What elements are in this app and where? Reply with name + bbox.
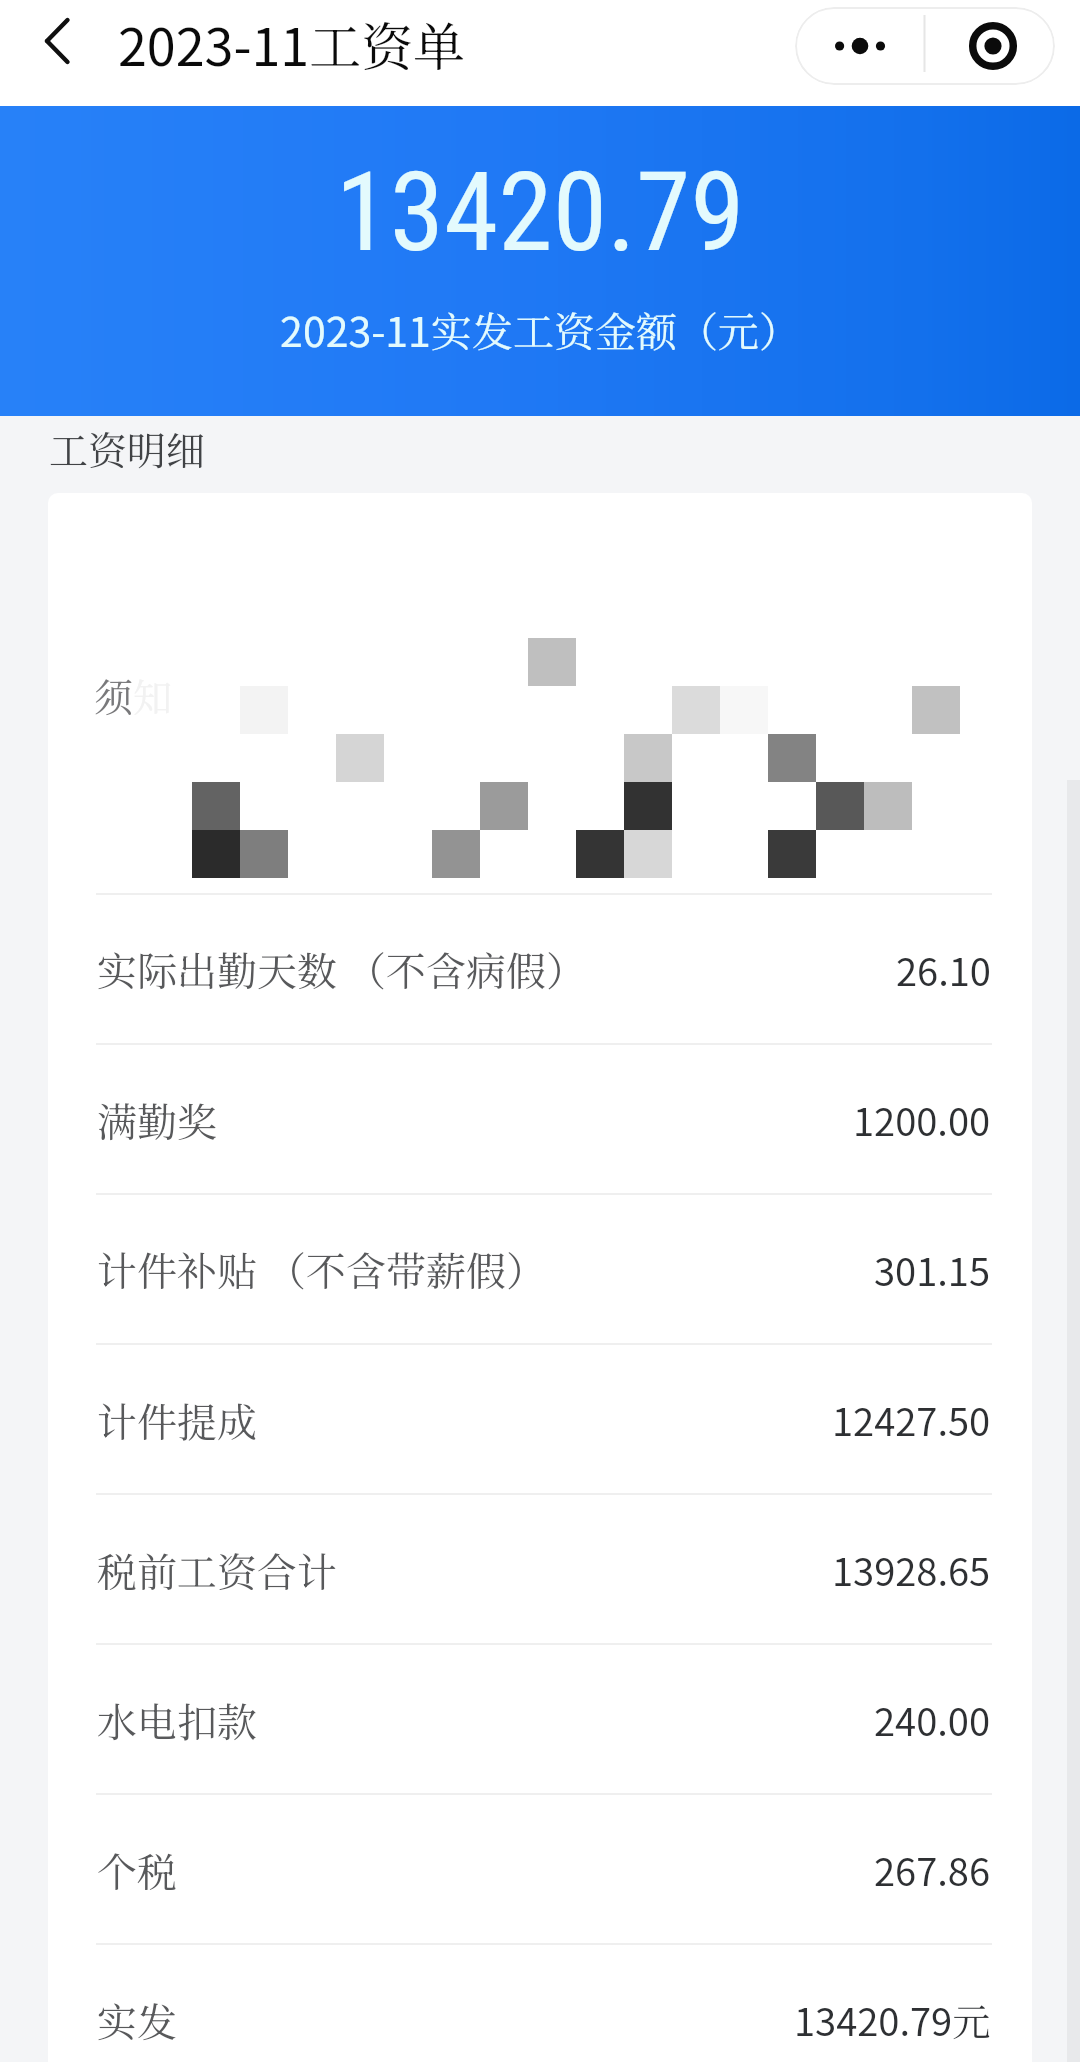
staticText: 2023-11实发工资金额（元）: [0, 299, 1080, 358]
staticText: 水电扣款: [97, 1691, 257, 1748]
staticText: 13928.65: [832, 1542, 991, 1597]
button[interactable]: 计件提成: [48, 1345, 1032, 1493]
button[interactable]: Back: [14, 6, 104, 96]
staticText: 2023-11工资单: [118, 6, 466, 81]
button[interactable]: 个税: [48, 1795, 1032, 1943]
staticText: 13420.79元: [794, 1992, 991, 2047]
button[interactable]: Close mini program: [925, 7, 1055, 85]
staticText: 个税: [97, 1841, 177, 1898]
staticText: 301.15: [874, 1242, 991, 1297]
staticText: 计件补贴 （不含带薪假）: [97, 1240, 546, 1298]
staticText: 税前工资合计: [97, 1541, 337, 1598]
button[interactable]: 实际出勤天数 （不含病假）: [48, 895, 1032, 1043]
staticText: 26.10: [896, 942, 991, 997]
button[interactable]: 满勤奖: [48, 1045, 1032, 1193]
staticText: 1200.00: [853, 1092, 991, 1147]
staticText: 240.00: [874, 1692, 991, 1747]
staticText: 实际出勤天数 （不含病假）: [97, 940, 586, 998]
button[interactable]: More options: [795, 7, 925, 85]
staticText: 12427.50: [832, 1392, 991, 1447]
button[interactable]: 水电扣款: [48, 1645, 1032, 1793]
staticText: 知: [133, 667, 173, 723]
button[interactable]: 税前工资合计: [48, 1495, 1032, 1643]
staticText: 267.86: [874, 1842, 991, 1897]
staticText: 13420.79: [0, 148, 1080, 277]
staticText: 计件提成: [97, 1391, 257, 1448]
staticText: 须: [94, 667, 134, 723]
staticText: 满勤奖: [97, 1091, 217, 1148]
staticText: 工资明细: [49, 420, 206, 476]
staticText: 实发: [97, 1991, 177, 2048]
button[interactable]: 计件补贴 （不含带薪假）: [48, 1195, 1032, 1343]
button[interactable]: 实发: [48, 1945, 1032, 2062]
